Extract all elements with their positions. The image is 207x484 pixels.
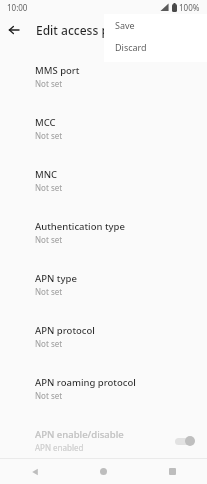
- staticText: Not set: [35, 182, 63, 193]
- button[interactable]: Discard: [104, 36, 207, 58]
- staticText: APN enabled: [35, 442, 84, 453]
- staticText: MNC: [35, 168, 58, 181]
- staticText: MMS port: [35, 64, 80, 77]
- staticText: APN protocol: [35, 324, 95, 337]
- staticText: Not set: [35, 234, 63, 245]
- staticText: Not set: [35, 286, 63, 297]
- button[interactable]: Bearer: [0, 473, 207, 484]
- button[interactable]: Back: [0, 16, 28, 44]
- staticText: Not set: [35, 78, 63, 89]
- staticText: Save: [115, 19, 135, 31]
- staticText: 10:00: [7, 2, 28, 13]
- staticText: APN type: [35, 272, 77, 285]
- button[interactable]: APN enable/disable: [0, 421, 207, 460]
- staticText: Not set: [35, 338, 63, 349]
- staticText: Not set: [35, 30, 63, 41]
- staticText: APN roaming protocol: [35, 376, 136, 389]
- button[interactable]: APN roaming protocol: [0, 369, 207, 408]
- button[interactable]: Authentication type: [0, 213, 207, 252]
- staticText: APN enable/disable: [35, 428, 124, 441]
- button[interactable]: APN protocol: [0, 317, 207, 356]
- staticText: Not set: [35, 390, 63, 401]
- staticText: Authentication type: [35, 220, 125, 233]
- staticText: Not set: [35, 130, 63, 141]
- button[interactable]: MCC: [0, 109, 207, 148]
- button[interactable]: MNC: [0, 161, 207, 200]
- staticText: Discard: [115, 41, 147, 53]
- button[interactable]: Home: [69, 459, 138, 484]
- button[interactable]: MMS port: [0, 57, 207, 96]
- staticText: Edit access point: [36, 22, 132, 38]
- button[interactable]: APN type: [0, 265, 207, 304]
- staticText: MCC: [35, 116, 56, 129]
- button[interactable]: Save: [104, 14, 207, 36]
- button[interactable]: Recent apps: [138, 459, 207, 484]
- staticText: 100%: [179, 2, 200, 13]
- button[interactable]: Back: [0, 459, 69, 484]
